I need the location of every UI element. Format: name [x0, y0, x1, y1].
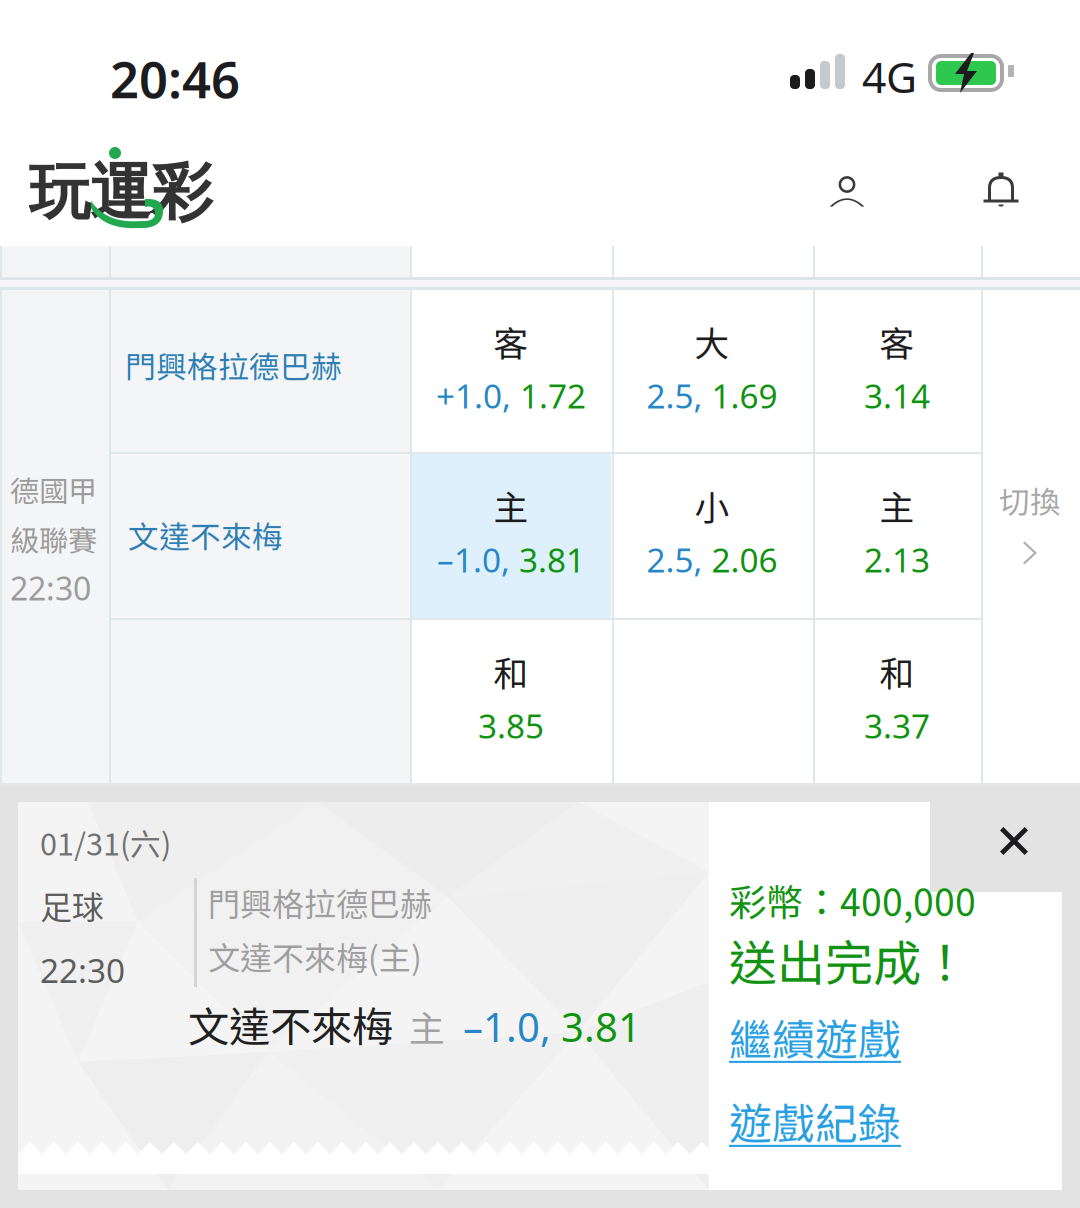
staticText: –1.0, — [453, 1000, 561, 1053]
staticText: 2.5, — [646, 537, 711, 582]
staticText: 3.81 — [561, 1000, 641, 1053]
staticText: 玩運彩 — [29, 154, 212, 231]
staticText: 足球 — [40, 882, 104, 928]
button[interactable]: 客 — [0, 246, 166, 406]
staticText: 3.37 — [864, 703, 930, 748]
button[interactable]: 門興格拉德巴赫 — [0, 246, 301, 408]
staticText: 客 — [493, 316, 528, 366]
button[interactable]: 主 — [0, 246, 200, 410]
staticText: 和 — [879, 646, 914, 696]
staticText: 彩幣：400,000 — [729, 873, 976, 927]
staticText: 主 — [493, 480, 528, 530]
button[interactable]: 大 — [0, 246, 199, 406]
staticText: +1.0, — [436, 373, 520, 418]
staticText: 1.69 — [711, 373, 777, 418]
staticText: 文達不來梅(主) — [208, 933, 422, 979]
staticText: 門興格拉德巴赫 — [208, 879, 432, 925]
button[interactable]: 文達不來梅 — [0, 246, 301, 412]
button[interactable]: 關閉 — [930, 802, 1062, 892]
button[interactable]: 繼續遊戲 — [0, 786, 172, 848]
staticText: 繼續遊戲 — [729, 1006, 901, 1068]
button[interactable]: 客 — [0, 246, 200, 406]
staticText: 3.81 — [519, 537, 585, 582]
staticText: 和 — [493, 646, 528, 696]
button[interactable]: 會員 — [787, 118, 907, 246]
button[interactable]: 小 — [0, 246, 199, 410]
staticText: 德國甲 — [10, 468, 97, 510]
staticText: 3.85 — [478, 703, 544, 748]
staticText: 遊戲紀錄 — [729, 1090, 901, 1152]
staticText: 1.72 — [520, 373, 586, 418]
staticText: 2.5, — [646, 373, 711, 418]
button[interactable]: 遊戲紀錄 — [0, 786, 172, 848]
button[interactable]: 通知 — [941, 118, 1061, 246]
staticText: 01/31(六) — [40, 820, 171, 864]
staticText: 3.14 — [864, 373, 930, 418]
staticText: 20:46 — [110, 45, 240, 112]
staticText: –1.0, — [437, 537, 519, 582]
staticText: 22:30 — [10, 567, 91, 609]
staticText: 文達不來梅 — [188, 994, 393, 1054]
staticText: 2.13 — [864, 537, 930, 582]
staticText: 主 — [879, 480, 914, 530]
staticText: 門興格拉德巴赫 — [125, 343, 342, 387]
staticText: 主 — [393, 1000, 453, 1052]
staticText: 4G — [862, 48, 917, 105]
staticText: 小 — [694, 480, 729, 530]
staticText: 22:30 — [40, 948, 125, 992]
staticText: 級聯賽 — [10, 517, 97, 560]
staticText: 切換 — [999, 478, 1061, 522]
staticText: 文達不來梅 — [128, 513, 283, 557]
staticText: 大 — [694, 316, 729, 366]
button[interactable]: 和 — [0, 246, 166, 408]
button[interactable]: 主 — [0, 246, 166, 410]
button[interactable]: 和 — [0, 246, 200, 408]
staticText: 2.06 — [711, 537, 777, 582]
staticText: 客 — [879, 316, 914, 366]
staticText: 送出完成！ — [729, 925, 969, 994]
button[interactable]: 切換 — [0, 246, 98, 376]
